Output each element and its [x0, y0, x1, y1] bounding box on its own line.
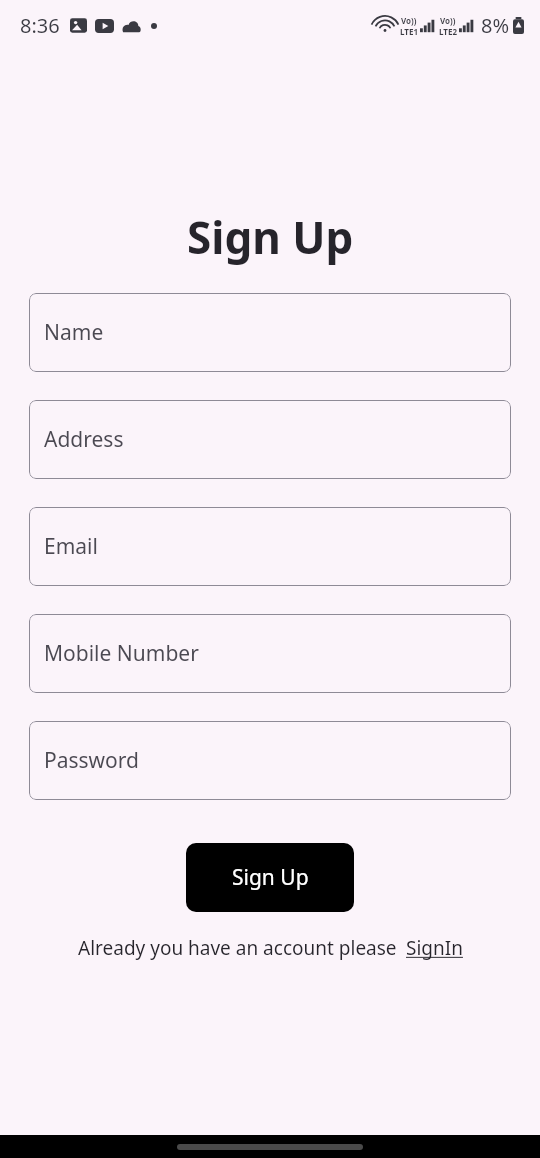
- staticText: LTE1: [400, 26, 418, 37]
- button[interactable]: SignIn: [406, 935, 463, 961]
- staticText: SignIn: [406, 935, 463, 961]
- button[interactable]: Name: [29, 293, 511, 372]
- staticText: Sign Up: [232, 863, 309, 892]
- staticText: Vo)): [401, 15, 417, 26]
- button[interactable]: Mobile Number: [29, 614, 511, 693]
- button[interactable]: Sign Up: [186, 843, 354, 912]
- staticText: 8%: [481, 12, 510, 39]
- staticText: LTE2: [439, 26, 457, 37]
- staticText: Mobile Number: [44, 639, 199, 668]
- staticText: Already you have an account please: [78, 935, 397, 961]
- staticText: Vo)): [440, 15, 456, 26]
- staticText: Sign Up: [187, 207, 354, 267]
- staticText: Address: [44, 425, 124, 454]
- button[interactable]: Email: [29, 507, 511, 586]
- staticText: Password: [44, 746, 139, 775]
- button[interactable]: Password: [29, 721, 511, 800]
- staticText: Email: [44, 532, 98, 561]
- button[interactable]: Address: [29, 400, 511, 479]
- staticText: 8:36: [20, 12, 60, 39]
- staticText: Name: [44, 318, 104, 347]
